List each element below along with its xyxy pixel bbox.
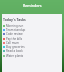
button[interactable]: Water plants (2, 54, 62, 58)
staticText: Reminders (23, 3, 42, 8)
staticText: Pay the bills (6, 37, 23, 41)
button[interactable]: Team standup (2, 28, 62, 32)
button[interactable]: Read a book (2, 49, 62, 53)
button[interactable]: Call mum (2, 41, 62, 45)
staticText: Morning run (6, 24, 24, 28)
staticText: Call mum (6, 41, 19, 45)
button[interactable]: Morning run (2, 24, 62, 28)
button[interactable]: Code review (2, 32, 62, 36)
button[interactable]: Pay the bills (2, 37, 62, 41)
staticText: Water plants (6, 54, 24, 58)
staticText: Code review (6, 32, 23, 36)
staticText: Read a book (6, 49, 23, 53)
button[interactable]: Buy groceries (2, 45, 62, 49)
staticText: Today's Tasks (3, 17, 26, 22)
staticText: Buy groceries (6, 45, 25, 49)
staticText: Team standup (6, 28, 26, 32)
